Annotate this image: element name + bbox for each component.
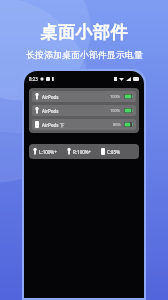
- staticText: 100%: [110, 108, 121, 113]
- staticText: AirPods 下: [42, 122, 113, 128]
- button[interactable]: C:85%: [101, 148, 135, 155]
- button[interactable]: AirPods: [32, 105, 136, 116]
- staticText: AirPods: [42, 94, 110, 100]
- button[interactable]: AirPods: [32, 91, 136, 102]
- button[interactable]: R:100%+: [67, 148, 101, 155]
- button[interactable]: AirPods 下: [32, 119, 136, 130]
- button[interactable]: L:100%+: [29, 144, 139, 159]
- staticText: AirPods: [42, 108, 110, 114]
- staticText: L:100%+: [39, 149, 57, 155]
- staticText: 100%: [110, 94, 121, 99]
- staticText: 桌面小部件: [40, 22, 128, 43]
- staticText: C:85%: [107, 149, 121, 155]
- button[interactable]: L:100%+: [33, 148, 67, 155]
- staticText: 8:23: [29, 76, 38, 82]
- staticText: 85%: [113, 122, 121, 127]
- staticText: R:100%+: [73, 149, 92, 155]
- staticText: 长按添加桌面小部件显示电量: [26, 49, 143, 60]
- button[interactable]: AirPods: [29, 88, 139, 133]
